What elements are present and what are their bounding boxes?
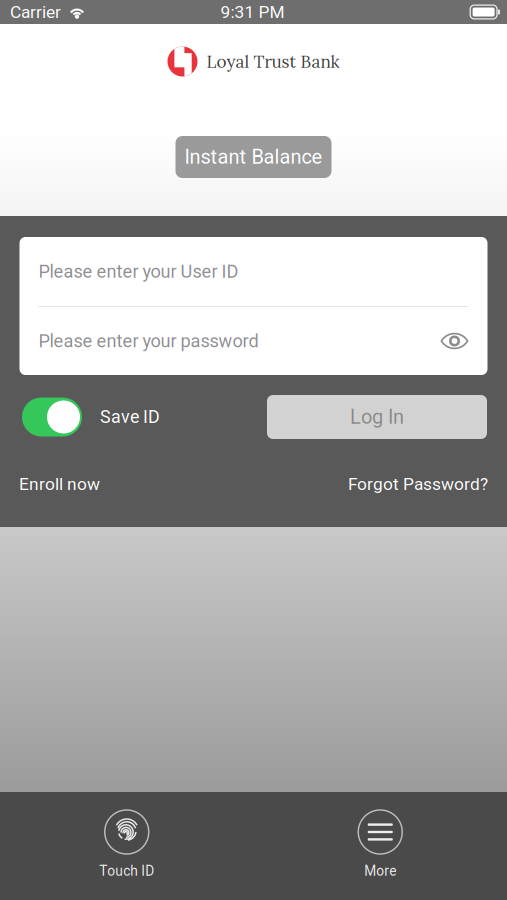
staticText: Please enter your password	[38, 330, 258, 352]
button[interactable]: Log In	[267, 395, 487, 439]
staticText: More	[364, 863, 396, 879]
staticText: Enroll now	[19, 474, 100, 494]
staticText: Log In	[350, 405, 404, 429]
staticText: 9:31 PM	[220, 2, 284, 22]
staticText: Save ID	[100, 406, 160, 427]
button[interactable]: Forgot Password?	[348, 474, 488, 494]
button[interactable]: Enroll now	[19, 474, 100, 494]
staticText: Loyal Trust Bank	[206, 51, 339, 72]
staticText: Touch ID	[99, 863, 154, 879]
button[interactable]: Instant Balance	[175, 136, 331, 178]
button[interactable]: Save ID	[22, 397, 160, 436]
button[interactable]: Touch ID	[0, 810, 253, 879]
staticText: Forgot Password?	[348, 474, 488, 494]
button[interactable]: More	[253, 810, 507, 879]
staticText: Carrier	[10, 2, 61, 22]
button[interactable]: Show password	[432, 327, 468, 355]
staticText: Instant Balance	[184, 145, 322, 169]
staticText: Please enter your User ID	[38, 261, 238, 282]
